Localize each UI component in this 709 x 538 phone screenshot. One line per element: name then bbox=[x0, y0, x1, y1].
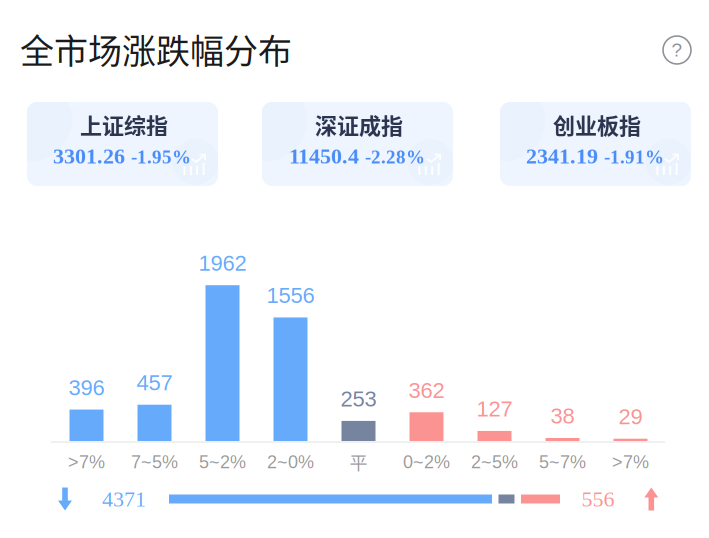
button[interactable]: Help bbox=[660, 33, 694, 67]
button[interactable]: 深证成指 bbox=[262, 102, 453, 186]
button[interactable]: 上证综指 bbox=[27, 102, 218, 186]
staticText: 38 bbox=[550, 404, 574, 428]
button[interactable]: 创业板指 bbox=[500, 102, 691, 186]
staticText: -1.95% bbox=[131, 146, 191, 167]
staticText: 0~2% bbox=[403, 452, 450, 472]
staticText: 全市场涨跌幅分布 bbox=[20, 24, 292, 74]
staticText: 4371 bbox=[102, 487, 146, 511]
staticText: 深证成指 bbox=[315, 109, 403, 140]
staticText: 253 bbox=[340, 387, 376, 411]
staticText: 1556 bbox=[266, 283, 314, 308]
staticText: 2~0% bbox=[267, 452, 314, 472]
staticText: 362 bbox=[408, 378, 444, 403]
staticText: >7% bbox=[68, 452, 105, 472]
staticText: 11450.4 bbox=[289, 144, 359, 168]
staticText: 7~5% bbox=[131, 452, 178, 472]
staticText: 2341.19 bbox=[526, 144, 598, 168]
staticText: 29 bbox=[618, 404, 642, 429]
staticText: 556 bbox=[581, 487, 614, 511]
staticText: 127 bbox=[476, 397, 512, 421]
staticText: 5~2% bbox=[199, 452, 246, 472]
staticText: -2.28% bbox=[365, 146, 425, 167]
staticText: 平 bbox=[349, 449, 367, 475]
staticText: 457 bbox=[136, 370, 172, 395]
staticText: 创业板指 bbox=[553, 109, 641, 140]
staticText: 396 bbox=[68, 375, 104, 400]
staticText: 1962 bbox=[198, 251, 246, 275]
staticText: 5~7% bbox=[539, 452, 586, 472]
staticText: ? bbox=[671, 39, 682, 61]
staticText: -1.91% bbox=[604, 146, 664, 167]
staticText: 3301.26 bbox=[53, 144, 125, 168]
staticText: 上证综指 bbox=[80, 109, 168, 140]
staticText: 2~5% bbox=[471, 452, 518, 472]
staticText: >7% bbox=[612, 452, 649, 472]
